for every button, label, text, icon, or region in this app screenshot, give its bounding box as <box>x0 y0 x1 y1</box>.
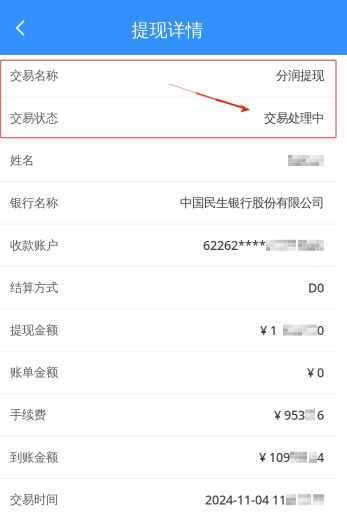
staticText: 6 <box>317 406 324 423</box>
staticText: 交易时间 <box>10 492 58 507</box>
staticText: D0 <box>308 279 324 296</box>
staticText: 62262**** <box>203 237 266 254</box>
staticText: 提现金额 <box>10 322 58 338</box>
staticText: 交易名称 <box>10 68 58 83</box>
staticText: 交易状态 <box>10 110 58 126</box>
staticText: 银行名称 <box>10 195 58 211</box>
staticText: 提现详情 <box>131 19 203 42</box>
staticText: 中国民生银行股份有限公司 <box>180 195 324 211</box>
staticText: 手续费 <box>10 407 46 423</box>
staticText: 收款账户 <box>10 238 58 253</box>
staticText: 分润提现 <box>276 68 324 83</box>
staticText: ¥ 1 <box>260 322 277 339</box>
staticText: 到账金额 <box>10 450 58 465</box>
staticText: ¥ 953 <box>274 406 305 423</box>
staticText: ¥ 0 <box>307 364 324 381</box>
staticText: ¥ 109 <box>259 449 290 466</box>
button[interactable]: 返回 <box>0 10 41 46</box>
staticText: 账单金额 <box>10 365 58 380</box>
staticText: 交易处理中 <box>264 110 324 126</box>
staticText: 姓名 <box>10 153 34 168</box>
staticText: 0 <box>317 322 324 339</box>
staticText: 2024-11-04 11 <box>205 491 286 508</box>
staticText: 4 <box>317 449 324 466</box>
staticText: 结算方式 <box>10 280 58 295</box>
